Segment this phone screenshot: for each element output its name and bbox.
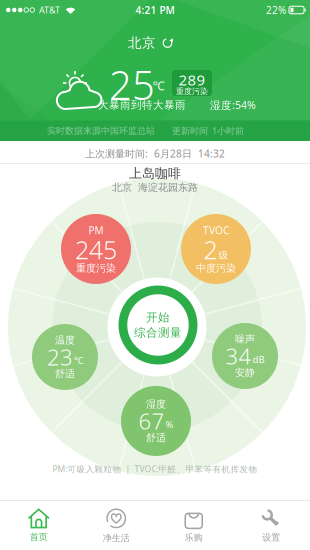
staticText: 245 xyxy=(75,233,117,266)
button[interactable]: 温度 xyxy=(32,324,98,390)
staticText: 乐购 xyxy=(185,532,203,543)
staticText: 2 xyxy=(203,233,217,266)
staticText: 重度污染 xyxy=(176,86,208,96)
button[interactable]: 湿度 xyxy=(121,386,191,456)
staticText: 湿度:54% xyxy=(210,98,256,112)
staticText: TVOC xyxy=(203,224,229,237)
staticText: 实时数据来源中国环监总站 xyxy=(47,125,155,136)
button[interactable]: 乐购 xyxy=(155,501,232,550)
staticText: dB xyxy=(252,353,264,366)
staticText: 舒适 xyxy=(55,368,75,380)
staticText: 上岛咖啡 xyxy=(129,165,181,181)
staticText: 更新时间 1小时前 xyxy=(172,125,244,137)
button[interactable]: 噪声 xyxy=(212,323,278,389)
staticText: 首页 xyxy=(30,531,48,542)
staticText: PM:可吸入颗粒物 | TVOC:甲醛、甲苯等有机挥发物 xyxy=(52,463,257,475)
staticText: 综合测量 xyxy=(134,325,182,340)
button[interactable]: 首页 xyxy=(0,501,77,550)
staticText: 23 xyxy=(47,342,73,372)
staticText: PM xyxy=(88,224,103,237)
staticText: 净生活 xyxy=(103,532,130,543)
staticText: ℃ xyxy=(152,77,164,93)
staticText: 湿度 xyxy=(146,398,166,410)
staticText: ℃ xyxy=(74,354,83,367)
button[interactable]: 刷新城市 xyxy=(128,35,173,51)
staticText: 北京 海淀花园东路 xyxy=(112,181,198,194)
staticText: 25 xyxy=(109,58,155,111)
staticText: 设置 xyxy=(262,532,280,543)
button[interactable]: 开始 xyxy=(118,285,197,364)
button[interactable]: 设置 xyxy=(232,501,310,550)
staticText: AT&T xyxy=(39,4,60,16)
staticText: 289 xyxy=(178,70,205,89)
button[interactable]: TVOC xyxy=(181,214,251,284)
staticText: 22% xyxy=(266,3,286,17)
button[interactable]: PM xyxy=(61,214,131,284)
staticText: 开始 xyxy=(146,310,170,324)
staticText: 舒适 xyxy=(146,432,166,444)
staticText: 中度污染 xyxy=(196,262,236,274)
staticText: 大暴雨到特大暴雨 xyxy=(98,99,186,111)
staticText: 34 xyxy=(225,341,251,371)
staticText: 北京 xyxy=(128,35,156,51)
staticText: 噪声 xyxy=(235,333,255,345)
staticText: 上次测量时间: 6月28日 14:32 xyxy=(85,147,225,160)
staticText: 安静 xyxy=(235,367,255,379)
staticText: 温度 xyxy=(55,334,75,346)
button[interactable]: 净生活 xyxy=(77,501,155,550)
staticText: 4:21 PM xyxy=(135,3,174,17)
staticText: 级 xyxy=(218,249,228,261)
staticText: % xyxy=(165,418,173,431)
staticText: 重度污染 xyxy=(76,262,116,274)
staticText: 67 xyxy=(138,406,164,436)
